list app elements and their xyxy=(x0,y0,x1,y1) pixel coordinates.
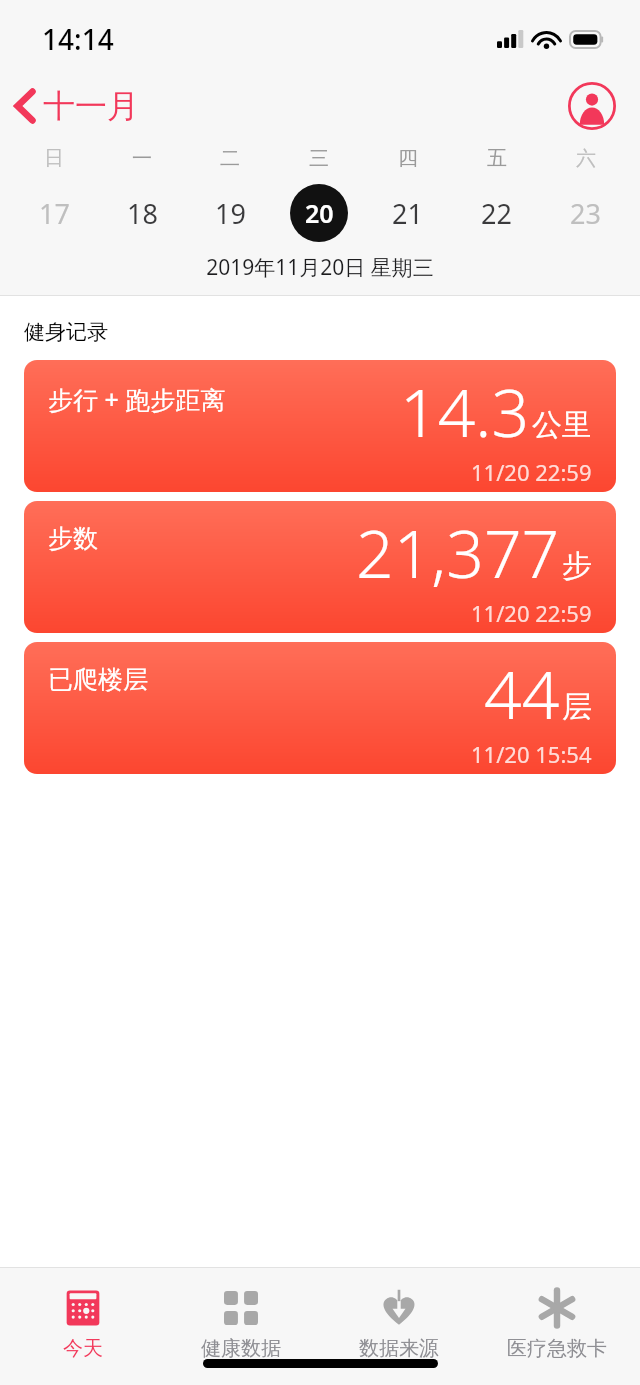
staticText: 44 xyxy=(484,648,560,738)
button[interactable]: 今天 xyxy=(8,1282,158,1365)
staticText: 22 xyxy=(481,195,512,232)
staticText: 十一月 xyxy=(43,86,139,126)
staticText: 层 xyxy=(562,688,592,726)
button[interactable]: 22 xyxy=(452,181,541,245)
staticText: 11/20 15:54 xyxy=(471,739,592,769)
staticText: 今天 xyxy=(63,1336,103,1361)
button[interactable]: 17 xyxy=(10,181,98,245)
button[interactable]: 18 xyxy=(98,181,186,245)
staticText: 数据来源 xyxy=(359,1336,439,1361)
staticText: 二 xyxy=(220,146,240,171)
staticText: 23 xyxy=(570,195,601,232)
staticText: 14:14 xyxy=(42,20,114,58)
button[interactable]: 数据来源 xyxy=(324,1282,474,1365)
button[interactable]: 健康数据 xyxy=(166,1282,316,1365)
staticText: 2019年11月20日 星期三 xyxy=(0,253,640,282)
button[interactable]: 十一月 xyxy=(0,80,149,132)
staticText: 三 xyxy=(309,146,329,171)
staticText: 公里 xyxy=(532,406,592,444)
staticText: 一 xyxy=(132,146,152,171)
button[interactable]: 21 xyxy=(363,181,452,245)
staticText: 11/20 22:59 xyxy=(471,598,592,628)
button[interactable]: 个人资料 xyxy=(564,78,620,134)
staticText: 11/20 22:59 xyxy=(471,457,592,487)
button[interactable]: 20 xyxy=(274,181,363,245)
button[interactable]: 步行 + 跑步距离 xyxy=(24,360,616,492)
staticText: 医疗急救卡 xyxy=(507,1336,607,1361)
staticText: 20 xyxy=(305,196,334,230)
staticText: 日 xyxy=(44,146,64,171)
button[interactable]: 19 xyxy=(186,181,274,245)
staticText: 已爬楼层 xyxy=(48,664,148,695)
button[interactable]: 23 xyxy=(541,181,630,245)
staticText: 健身记录 xyxy=(24,319,108,345)
button[interactable]: 步数 xyxy=(24,501,616,633)
staticText: 21 xyxy=(392,195,423,232)
staticText: 21,377 xyxy=(356,507,560,597)
staticText: 14.3 xyxy=(400,366,530,456)
button[interactable]: 医疗急救卡 xyxy=(482,1282,632,1365)
staticText: 六 xyxy=(576,146,596,171)
staticText: 五 xyxy=(487,146,507,171)
staticText: 17 xyxy=(39,195,70,232)
staticText: 步数 xyxy=(48,523,98,554)
staticText: 四 xyxy=(398,146,418,171)
button[interactable]: 已爬楼层 xyxy=(24,642,616,774)
staticText: 步 xyxy=(562,547,592,585)
staticText: 步行 + 跑步距离 xyxy=(48,382,226,416)
staticText: 18 xyxy=(127,195,158,232)
staticText: 健康数据 xyxy=(201,1336,281,1361)
staticText: 19 xyxy=(215,195,246,232)
